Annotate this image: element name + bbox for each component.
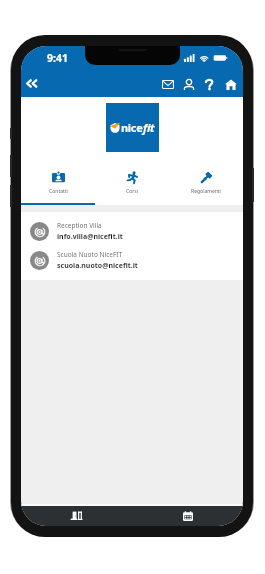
button[interactable]: Contatti (21, 152, 95, 205)
button[interactable]: Corsi (95, 152, 169, 205)
staticText: Scuola Nuoto NiceFIT (57, 250, 123, 259)
button[interactable]: Home (220, 73, 241, 95)
staticText: nice (121, 120, 143, 135)
staticText: scuola.nuoto@nicefit.it (57, 261, 138, 271)
button[interactable]: Reception Villa (21, 217, 243, 246)
button[interactable]: Help (199, 73, 220, 95)
button[interactable]: Calendar (132, 506, 243, 526)
staticText: Reception Villa (57, 221, 102, 230)
staticText: 9:41 (47, 51, 68, 65)
staticText: fit (143, 120, 155, 135)
button[interactable]: Messages (157, 73, 178, 95)
staticText: Regolamenti (191, 188, 221, 195)
button[interactable]: Regolamenti (169, 152, 243, 205)
button[interactable]: Back (22, 73, 41, 93)
button[interactable]: Exit (21, 506, 132, 526)
staticText: info.villa@nicefit.it (57, 232, 123, 242)
button[interactable]: Scuola Nuoto NiceFIT (21, 246, 243, 275)
button[interactable]: Profile (178, 73, 199, 95)
staticText: Corsi (126, 188, 138, 195)
staticText: Contatti (49, 188, 68, 195)
